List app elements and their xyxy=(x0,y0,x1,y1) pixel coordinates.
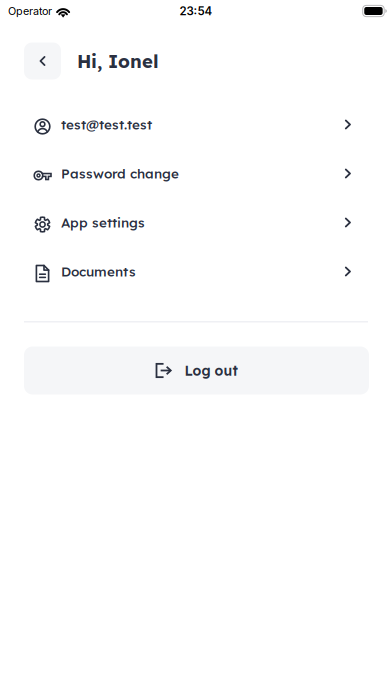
button[interactable]: test@test.test xyxy=(0,100,392,149)
staticText: Log out xyxy=(184,362,237,379)
button[interactable]: Documents xyxy=(0,247,392,296)
button[interactable]: Password change xyxy=(0,149,392,198)
staticText: Operator xyxy=(8,4,52,18)
staticText: App settings xyxy=(61,214,145,231)
staticText: Hi, Ionel xyxy=(77,49,159,73)
staticText: 23:54 xyxy=(179,4,212,18)
staticText: Password change xyxy=(61,165,179,182)
staticText: test@test.test xyxy=(61,116,152,133)
staticText: Documents xyxy=(61,263,136,280)
button[interactable]: Back xyxy=(24,42,61,79)
button[interactable]: App settings xyxy=(0,198,392,247)
button[interactable]: Log out xyxy=(24,346,369,394)
